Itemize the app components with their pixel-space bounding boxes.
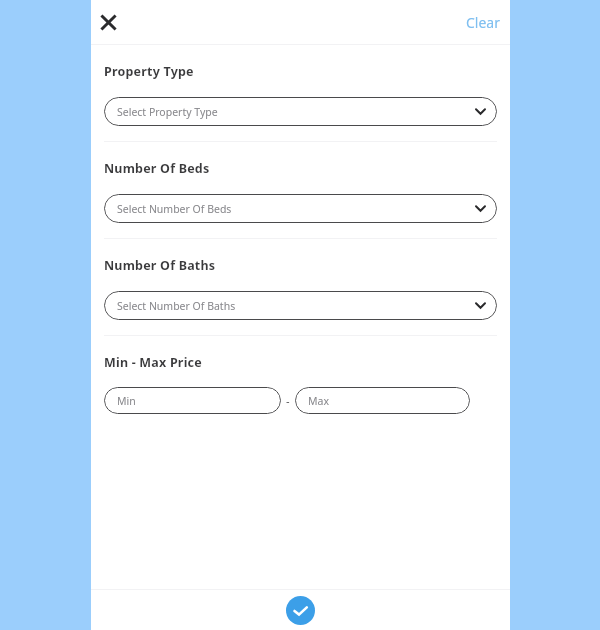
staticText: Number Of Beds [104, 160, 210, 177]
button[interactable]: Apply filters [286, 596, 315, 625]
staticText: - [286, 393, 290, 408]
staticText: Number Of Baths [104, 257, 216, 274]
button[interactable]: Min [104, 387, 281, 414]
button[interactable]: Select Property Type [104, 97, 497, 126]
button[interactable]: Select Number Of Baths [104, 291, 497, 320]
button[interactable]: Select Number Of Beds [104, 194, 497, 223]
staticText: Property Type [104, 63, 194, 80]
button[interactable]: Max [295, 387, 470, 414]
staticText: Select Number Of Beds [117, 202, 475, 216]
staticText: Min [117, 394, 136, 408]
button[interactable]: Close [91, 5, 125, 39]
staticText: Min - Max Price [104, 354, 202, 371]
staticText: Select Number Of Baths [117, 299, 475, 313]
staticText: Select Property Type [117, 105, 475, 119]
button[interactable]: Clear [456, 7, 510, 38]
staticText: Clear [466, 13, 500, 32]
staticText: Max [308, 394, 329, 408]
